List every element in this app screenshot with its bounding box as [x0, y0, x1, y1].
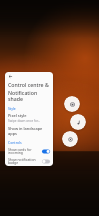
staticText: Show cards for incoming notifications: [8, 147, 40, 155]
button[interactable]: Show in landscape apps: [5, 125, 53, 137]
staticText: Pixel style: [8, 113, 27, 118]
staticText: Controls: [8, 140, 22, 145]
staticText: Show in landscape apps: [8, 126, 50, 136]
button[interactable]: Back: [5, 72, 53, 80]
button[interactable]: Music: [70, 114, 86, 130]
button[interactable]: Pixel style: [5, 112, 53, 124]
staticText: Control centre &: [8, 81, 49, 88]
staticText: Style: [8, 106, 16, 111]
button[interactable]: Show notification badge: [5, 156, 53, 166]
button[interactable]: Screenshot: [64, 96, 80, 112]
button[interactable]: Show cards for incoming notifications: [5, 146, 53, 156]
staticText: Swipe down once for…: [8, 119, 41, 123]
button[interactable]: Settings: [62, 131, 78, 147]
staticText: Notification shade: [8, 89, 50, 102]
staticText: Show notification badge: [8, 157, 40, 165]
